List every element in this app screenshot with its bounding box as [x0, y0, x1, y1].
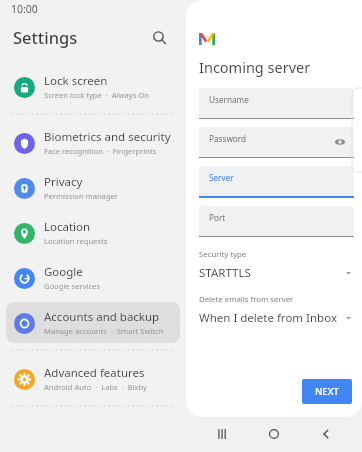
- button[interactable]: Lock screen: [6, 66, 180, 107]
- staticText: Face recognition · Fingerprints: [44, 146, 157, 156]
- staticText: Server: [209, 172, 234, 183]
- button[interactable]: Google: [6, 257, 180, 298]
- staticText: Lock screen: [44, 73, 172, 89]
- staticText: Screen lock type · Always On Display: [44, 90, 172, 100]
- staticText: Port: [209, 212, 226, 223]
- other: Show password: [335, 137, 345, 147]
- button[interactable]: NEXT: [302, 379, 352, 404]
- button[interactable]: Recent apps: [208, 419, 238, 449]
- button[interactable]: Accounts and backup: [6, 302, 180, 343]
- staticText: 10:00: [11, 2, 38, 16]
- staticText: Google services: [44, 281, 101, 291]
- staticText: Delete emails from server: [199, 294, 294, 305]
- staticText: When I delete from Inbox: [199, 310, 346, 326]
- staticText: Privacy: [44, 174, 172, 190]
- staticText: Biometrics and security: [44, 129, 172, 145]
- button[interactable]: Delete emails from server: [199, 294, 354, 326]
- staticText: Accounts and backup: [44, 309, 172, 325]
- staticText: NEXT: [315, 385, 339, 398]
- staticText: Android Auto · Labs · Bixby Routines: [44, 382, 172, 392]
- button[interactable]: Privacy: [6, 167, 180, 208]
- staticText: Advanced features: [44, 365, 172, 381]
- button[interactable]: Search: [146, 24, 172, 50]
- button[interactable]: Advanced features: [6, 358, 180, 399]
- staticText: Username: [209, 94, 249, 105]
- button[interactable]: Port: [199, 206, 354, 237]
- button[interactable]: Username: [199, 88, 354, 119]
- button[interactable]: Password: [199, 127, 354, 158]
- staticText: Google: [44, 264, 172, 280]
- staticText: STARTTLS: [199, 265, 346, 281]
- staticText: Location: [44, 219, 172, 235]
- button[interactable]: Biometrics and security: [6, 122, 180, 163]
- button[interactable]: Home: [259, 419, 289, 449]
- button[interactable]: Location: [6, 212, 180, 253]
- staticText: Permission manager: [44, 191, 118, 201]
- staticText: Incoming server settings: [199, 57, 354, 77]
- staticText: Password: [209, 133, 247, 144]
- staticText: Settings: [13, 26, 78, 48]
- button[interactable]: Back: [311, 419, 341, 449]
- button[interactable]: Server: [199, 166, 354, 198]
- staticText: Location requests: [44, 236, 108, 246]
- staticText: Security type: [199, 249, 247, 260]
- staticText: Manage accounts · Smart Switch: [44, 326, 164, 336]
- button[interactable]: Security type: [199, 249, 354, 281]
